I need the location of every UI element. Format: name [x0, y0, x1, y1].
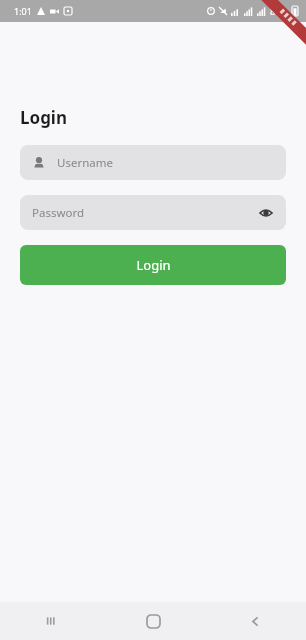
staticText: 89% — [270, 5, 288, 17]
button[interactable]: Back — [204, 602, 306, 640]
button[interactable]: Username — [20, 145, 286, 180]
staticText: Login — [20, 106, 68, 129]
button[interactable]: Login — [20, 245, 286, 285]
staticText: Login — [136, 256, 171, 274]
button[interactable]: Recents — [0, 602, 102, 640]
staticText: Password — [32, 205, 85, 221]
button[interactable]: Home — [102, 602, 204, 640]
staticText: Username — [57, 155, 113, 171]
button[interactable]: Password — [20, 195, 286, 230]
staticText: 1:01 — [14, 5, 32, 17]
button[interactable]: Show password — [256, 203, 276, 223]
